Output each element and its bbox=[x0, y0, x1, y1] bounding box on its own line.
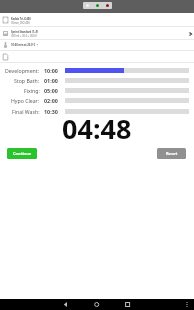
staticText: 05:00 bbox=[44, 87, 58, 94]
staticText: Kodak Tri-X 400 bbox=[11, 17, 31, 21]
staticText: Reset bbox=[166, 151, 178, 156]
staticText: 10:00 bbox=[44, 67, 58, 74]
button[interactable]: More options bbox=[180, 299, 194, 310]
button[interactable]: Home bbox=[88, 299, 106, 310]
button[interactable]: Back bbox=[57, 299, 75, 310]
button[interactable]: Open developer details bbox=[181, 27, 194, 39]
button[interactable]: Final Wash: bbox=[0, 106, 194, 116]
button[interactable]: Sprint Standard (1+9) bbox=[0, 27, 194, 39]
button[interactable]: Stop Bath: bbox=[0, 75, 194, 85]
staticText: Continue bbox=[13, 151, 32, 156]
button[interactable] bbox=[0, 51, 194, 62]
button[interactable]: Development: bbox=[0, 65, 194, 75]
button[interactable]: Continue bbox=[7, 148, 37, 159]
button[interactable]: Fixing: bbox=[0, 85, 194, 95]
button[interactable]: Kodak Tri-X 400 bbox=[0, 13, 194, 26]
button[interactable]: Hypo Clear: bbox=[0, 95, 194, 105]
staticText: 01:00 bbox=[44, 77, 58, 84]
staticText: Hypo Clear: bbox=[11, 97, 40, 104]
staticText: 10:30 bbox=[44, 108, 58, 115]
staticText: 02:00 bbox=[44, 97, 58, 104]
button[interactable]: 10:00 min at 20.0°C • bbox=[0, 40, 194, 50]
staticText: 04:48 bbox=[62, 110, 132, 140]
staticText: 300 ml + 30.0 + 450.0 bbox=[11, 34, 37, 38]
staticText: Stop Bath: bbox=[14, 77, 40, 84]
staticText: 35mm, ISO 400 bbox=[11, 21, 30, 25]
staticText: Sprint Standard (1+9) bbox=[11, 30, 39, 34]
staticText: 10:00 min at 20.0°C • bbox=[11, 43, 38, 47]
button[interactable]: Reset bbox=[157, 148, 186, 159]
staticText: Fixing: bbox=[24, 87, 40, 94]
staticText: Final Wash: bbox=[12, 108, 40, 115]
button[interactable]: Recent apps bbox=[119, 299, 137, 310]
staticText: Development: bbox=[5, 67, 40, 74]
